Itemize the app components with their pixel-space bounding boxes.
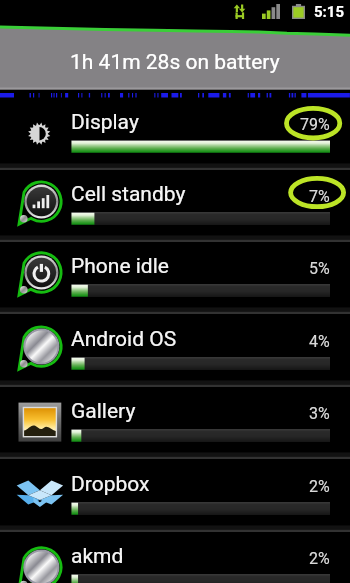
staticText: 2% bbox=[309, 477, 330, 496]
staticText: 5% bbox=[309, 259, 330, 278]
button[interactable]: Android OS bbox=[0, 314, 350, 386]
staticText: 5:15 bbox=[314, 3, 345, 21]
staticText: Phone idle bbox=[71, 254, 169, 279]
staticText: 3% bbox=[309, 404, 330, 423]
staticText: Android OS bbox=[71, 327, 177, 352]
staticText: 2% bbox=[309, 549, 330, 568]
staticText: Cell standby bbox=[71, 182, 186, 207]
button[interactable]: Dropbox bbox=[0, 459, 350, 531]
button[interactable]: Cell standby bbox=[0, 169, 350, 241]
staticText: akmd bbox=[71, 544, 124, 569]
staticText: 7% bbox=[309, 187, 330, 206]
staticText: 1h 41m 28s on battery bbox=[70, 50, 280, 75]
staticText: Gallery bbox=[71, 399, 136, 424]
staticText: Display bbox=[71, 110, 139, 135]
staticText: 4% bbox=[309, 332, 330, 351]
staticText: Dropbox bbox=[71, 472, 150, 497]
button[interactable]: Display bbox=[0, 97, 350, 169]
button[interactable]: akmd bbox=[0, 531, 350, 583]
button[interactable]: Phone idle bbox=[0, 241, 350, 313]
staticText: 79% bbox=[300, 115, 330, 134]
button[interactable]: Gallery bbox=[0, 386, 350, 458]
